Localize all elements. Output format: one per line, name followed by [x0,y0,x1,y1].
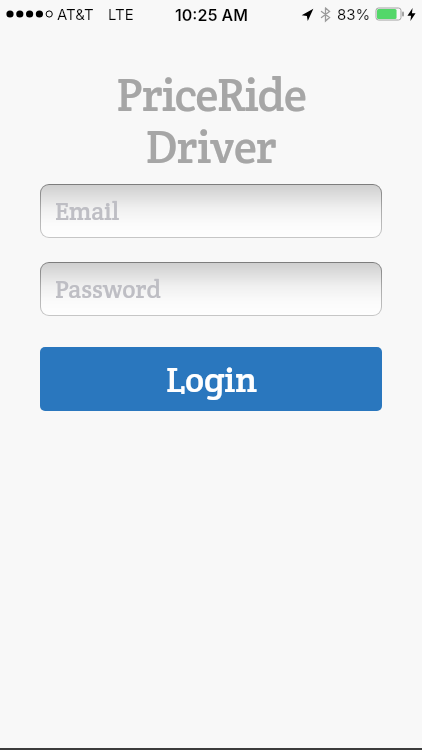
staticText: Email [55,195,120,227]
staticText: Login [166,356,257,402]
button[interactable]: Email [40,184,382,238]
button[interactable]: Login [40,347,382,411]
button[interactable]: Password [40,262,382,316]
staticText: PriceRide [0,64,422,124]
staticText: Password [55,273,161,305]
staticText: 10:25 AM [175,5,248,24]
staticText: LTE [108,5,134,23]
staticText: Driver [0,116,422,176]
staticText: 83% [337,5,371,23]
staticText: AT&T [57,5,94,23]
